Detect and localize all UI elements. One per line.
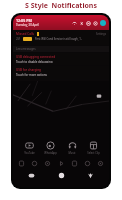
staticText: Missed Calls [16,32,35,36]
staticText: Touch to disable debugging [16,60,53,63]
button[interactable]: App 6 [97,160,104,167]
staticText: S Style Notifications [25,1,97,11]
button[interactable]: Wi-Fi [72,21,77,26]
staticText: Select Clip [87,151,100,155]
button[interactable]: USB debugging connected [13,53,109,65]
button[interactable]: Browser [86,171,95,180]
staticText: Touch for more options [16,73,47,76]
button[interactable]: WhatsApp [41,140,59,156]
staticText: First Will Cond Service is still ough, 1… [35,37,83,41]
button[interactable]: Settings [93,21,98,26]
button[interactable]: Bluetooth [79,21,84,26]
staticText: Tuesday, 30 April [16,23,39,27]
staticText: Settings [96,32,106,36]
staticText: USB debugging connected [16,55,56,59]
button[interactable]: App 4 [71,160,78,167]
staticText: 12:05 PM [16,18,32,23]
button[interactable]: Do not disturb [86,21,91,26]
button[interactable]: App 3 [58,160,65,167]
button[interactable]: Missed Calls [13,30,109,45]
staticText: Less messages [16,47,36,51]
button[interactable]: Messages [57,171,66,180]
button[interactable]: Music [63,140,81,156]
button[interactable]: App 2 [44,160,51,167]
staticText: YouTube [24,151,35,155]
button[interactable]: App 1 [31,160,38,167]
button[interactable]: Camera [96,93,102,99]
button[interactable]: Phone [27,171,36,180]
button[interactable]: USB for charging [13,66,109,78]
button[interactable]: App 0 [18,160,25,167]
button[interactable]: App 5 [84,160,91,167]
staticText: USB for charging [16,68,42,72]
staticText: Music [68,151,76,155]
staticText: WhatsApp [44,151,57,155]
button[interactable]: YouTube [20,140,38,156]
staticText: 2M [16,37,20,41]
button[interactable]: Select Clip [84,140,102,156]
button[interactable]: Profile [100,20,106,26]
